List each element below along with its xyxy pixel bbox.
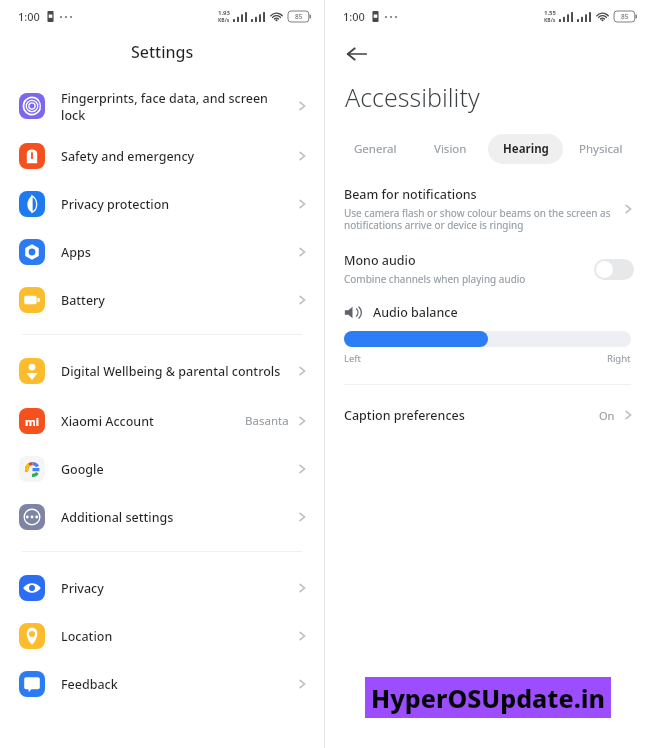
staticText: Additional settings xyxy=(61,509,286,526)
staticText: Xiaomi Account xyxy=(61,413,237,430)
button[interactable]: Safety and emergency xyxy=(0,132,324,180)
button[interactable]: Mono audio toggle xyxy=(594,259,634,280)
button[interactable]: Google xyxy=(0,445,324,493)
staticText: Apps xyxy=(61,244,286,261)
button[interactable]: Audio balance slider xyxy=(344,331,631,347)
button[interactable]: Fingerprints, face data, and screen lock xyxy=(0,80,324,132)
button[interactable]: Vision xyxy=(413,134,488,164)
staticText: 85 xyxy=(295,12,303,21)
staticText: Settings xyxy=(131,41,194,63)
button[interactable]: Feedback xyxy=(0,660,324,708)
button[interactable]: Back xyxy=(337,34,377,74)
staticText: Vision xyxy=(434,141,467,157)
button[interactable]: mi xyxy=(0,397,324,445)
staticText: Location xyxy=(61,628,286,645)
staticText: 1.55 xyxy=(544,9,556,17)
staticText: KB/s xyxy=(218,17,230,24)
button[interactable]: Additional settings xyxy=(0,493,324,541)
staticText: Basanta xyxy=(245,413,289,429)
staticText: Use camera flash or show colour beams on… xyxy=(344,206,612,232)
button[interactable]: Caption preferences xyxy=(325,399,650,431)
button[interactable]: Battery xyxy=(0,276,324,324)
staticText: On xyxy=(599,408,615,423)
button[interactable]: Physical xyxy=(563,134,638,164)
staticText: 1.93 xyxy=(218,9,230,17)
staticText: Hearing xyxy=(503,141,549,157)
staticText: Accessibility xyxy=(345,80,480,114)
staticText: 1:00 xyxy=(18,9,40,24)
button[interactable]: Digital Wellbeing & parental controls xyxy=(0,345,324,397)
staticText: KB/s xyxy=(544,17,556,24)
staticText: 85 xyxy=(621,12,629,21)
staticText: Privacy protection xyxy=(61,196,286,213)
button[interactable]: Hearing xyxy=(488,134,563,164)
staticText: HyperOSUpdate.in xyxy=(371,681,606,715)
staticText: Privacy xyxy=(61,580,286,597)
staticText: Audio balance xyxy=(373,304,458,321)
staticText: Right xyxy=(607,352,631,365)
staticText: Caption preferences xyxy=(344,407,599,424)
staticText: General xyxy=(354,141,397,157)
button[interactable]: Privacy xyxy=(0,564,324,612)
staticText: Digital Wellbeing & parental controls xyxy=(61,363,286,380)
staticText: Battery xyxy=(61,292,286,309)
staticText: Fingerprints, face data, and screen lock xyxy=(61,90,286,123)
staticText: Combine channels when playing audio xyxy=(344,272,526,286)
staticText: Mono audio xyxy=(344,252,416,269)
staticText: Google xyxy=(61,461,286,478)
staticText: Beam for notifications xyxy=(344,186,477,203)
staticText: 1:00 xyxy=(343,9,365,24)
staticText: Feedback xyxy=(61,676,286,693)
button[interactable]: Mono audio xyxy=(325,252,650,286)
button[interactable]: Privacy protection xyxy=(0,180,324,228)
button[interactable]: Beam for notifications xyxy=(325,186,650,232)
button[interactable]: Apps xyxy=(0,228,324,276)
staticText: Physical xyxy=(579,141,623,157)
staticText: mi xyxy=(25,414,40,429)
staticText: Safety and emergency xyxy=(61,148,286,165)
staticText: Left xyxy=(344,352,362,365)
button[interactable]: Location xyxy=(0,612,324,660)
button[interactable]: General xyxy=(337,134,413,164)
